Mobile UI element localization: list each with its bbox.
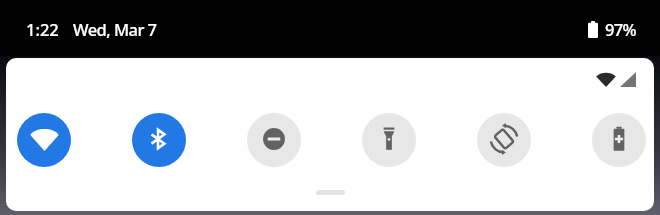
button[interactable]: Auto rotate <box>477 113 531 167</box>
button[interactable]: Do Not Disturb <box>247 113 301 167</box>
button[interactable]: Flashlight <box>362 113 416 167</box>
button[interactable]: Wi-Fi <box>17 113 71 167</box>
staticText: 1:22 <box>26 18 59 40</box>
button[interactable]: Bluetooth <box>132 113 186 167</box>
staticText: 97% <box>605 18 636 40</box>
button[interactable]: Battery Saver <box>592 113 646 167</box>
button[interactable]: Drag handle <box>316 190 345 195</box>
staticText: Wed, Mar 7 <box>73 18 157 40</box>
